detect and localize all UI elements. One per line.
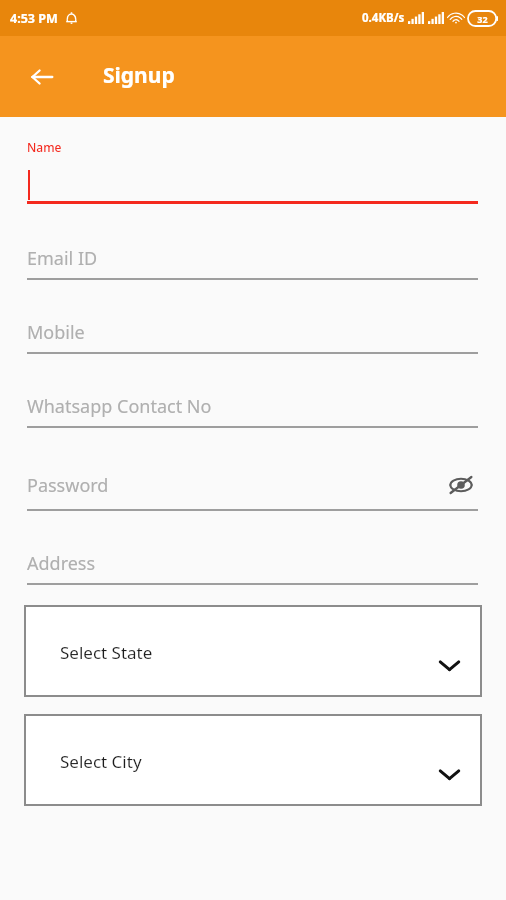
other: Expand Select State xyxy=(434,650,464,680)
staticText: 0.4KB/s xyxy=(362,10,405,26)
staticText: Mobile xyxy=(27,320,478,345)
staticText: Name xyxy=(27,139,62,155)
button[interactable]: Email ID xyxy=(0,246,506,280)
button[interactable]: Whatsapp Contact No xyxy=(0,394,506,428)
staticText: 4:53 PM xyxy=(10,10,58,27)
button[interactable]: Select City xyxy=(24,714,482,806)
staticText: Select City xyxy=(60,750,142,773)
button[interactable]: Select State xyxy=(24,605,482,697)
button[interactable]: Mobile xyxy=(0,320,506,354)
other: Expand Select City xyxy=(434,759,464,789)
staticText: Whatsapp Contact No xyxy=(27,394,478,419)
button[interactable]: Address xyxy=(0,551,506,585)
button[interactable]: Name xyxy=(0,139,506,204)
button[interactable]: Back xyxy=(18,53,66,101)
staticText: Email ID xyxy=(27,246,478,271)
button[interactable]: Show password xyxy=(444,468,478,502)
staticText: Signup xyxy=(103,61,175,90)
staticText: Address xyxy=(27,551,478,576)
button[interactable]: Password xyxy=(0,468,506,511)
staticText: 32 xyxy=(477,13,488,25)
staticText: Password xyxy=(27,473,444,498)
staticText: Select State xyxy=(60,641,153,664)
